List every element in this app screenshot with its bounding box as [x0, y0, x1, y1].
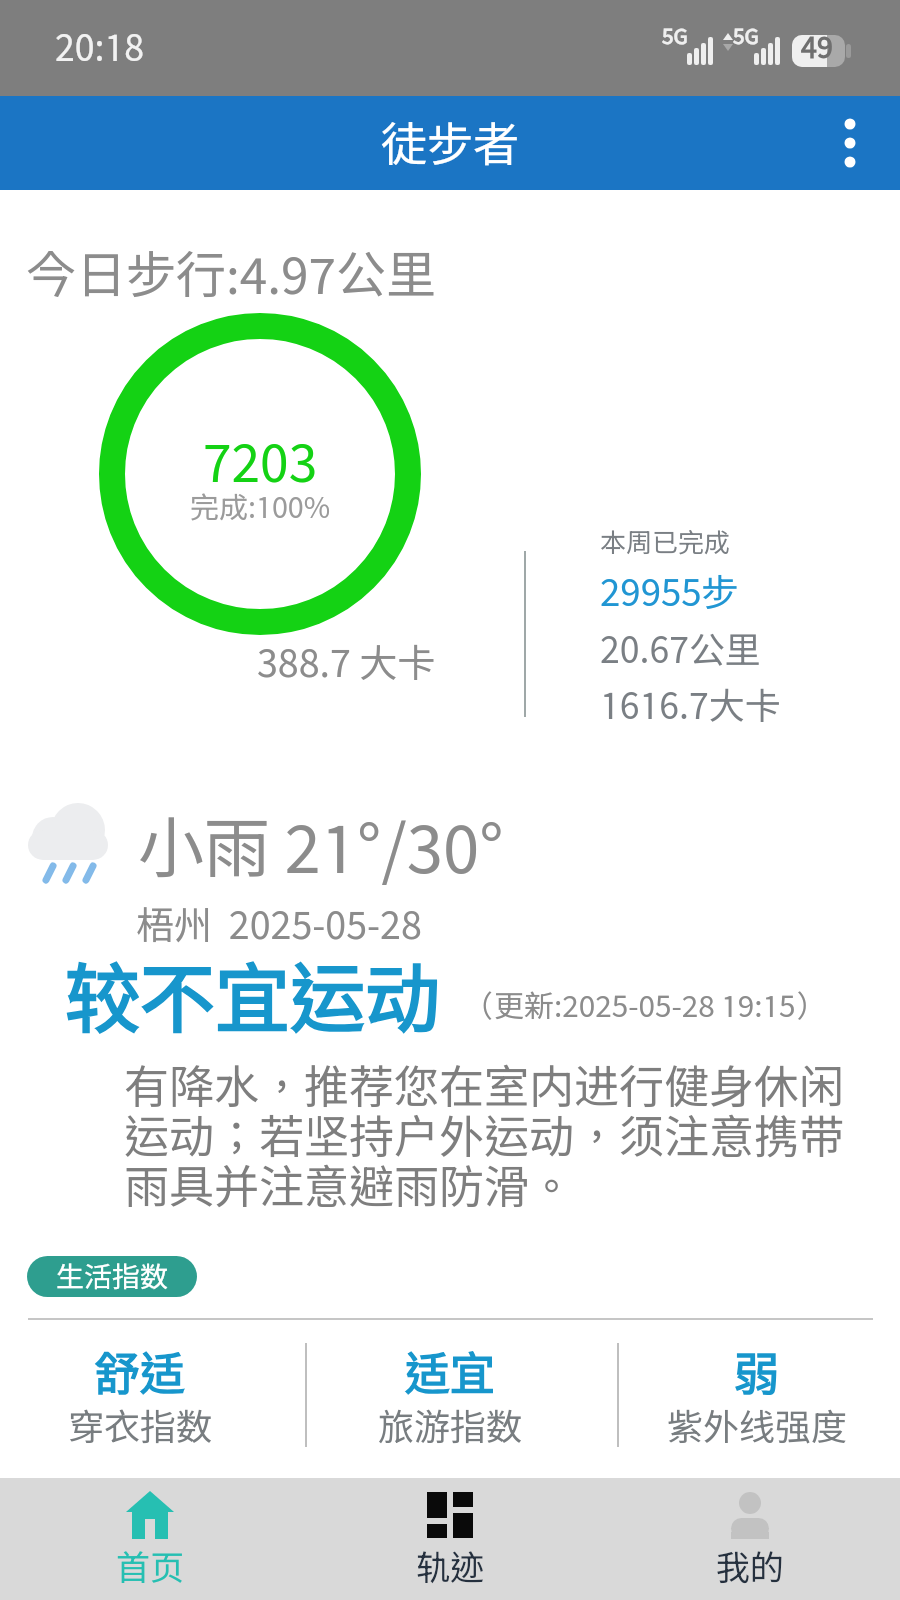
staticText: 较不宜运动 [65, 953, 441, 1041]
staticText: 7203 [203, 431, 318, 492]
staticText: 20.67公里 [600, 628, 761, 670]
staticText: 完成:100% [190, 490, 331, 524]
staticText: 388.7 大卡 [257, 640, 436, 685]
staticText: 5G [733, 24, 759, 49]
staticText: 轨迹 [416, 1547, 484, 1587]
staticText: 穿衣指数 [68, 1405, 213, 1447]
button[interactable]: 首页 [0, 1478, 300, 1600]
staticText: 29955步 [600, 570, 739, 614]
staticText: 我的 [716, 1547, 784, 1587]
staticText: 20:18 [55, 26, 144, 68]
staticText: 首页 [116, 1547, 184, 1587]
button[interactable]: 弱 [632, 1346, 882, 1447]
staticText: 舒适 [95, 1346, 186, 1399]
staticText: 有降水，推荐您在室内进行健身休闲 运动；若坚持户外运动，须注意携带 雨具并注意避… [124, 1059, 845, 1213]
staticText: 49 [801, 30, 833, 64]
button[interactable]: 轨迹 [300, 1478, 600, 1600]
staticText: 5G [662, 24, 688, 49]
staticText: 紫外线强度 [667, 1405, 848, 1447]
button[interactable] [800, 96, 900, 190]
staticText: 旅游指数 [378, 1405, 523, 1447]
staticText: 1616.7大卡 [600, 684, 781, 726]
staticText: 弱 [734, 1346, 780, 1399]
button[interactable]: 舒适 [15, 1346, 265, 1447]
staticText: 梧州 2025-05-28 [136, 902, 422, 947]
button[interactable]: 我的 [600, 1478, 900, 1600]
staticText: 今日步行:4.97公里 [26, 244, 436, 303]
button[interactable]: 生活指数 [27, 1256, 197, 1297]
staticText: （更新:2025-05-28 19:15） [464, 988, 826, 1023]
staticText: 小雨 21°/30° [138, 808, 504, 886]
staticText: 徒步者 [381, 116, 519, 170]
button[interactable]: 适宜 [325, 1346, 575, 1447]
staticText: 生活指数 [56, 1260, 169, 1293]
staticText: 本周已完成 [600, 527, 731, 558]
staticText: 适宜 [405, 1346, 496, 1399]
